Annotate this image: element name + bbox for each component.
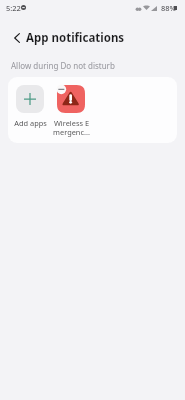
staticText: Add apps [14, 118, 47, 128]
staticText: App notifications [26, 30, 125, 46]
button[interactable]: Wireless E mergenc... [49, 85, 93, 137]
button[interactable]: Add apps [8, 85, 52, 128]
button[interactable]: Back [5, 26, 29, 50]
staticText: Wireless E mergenc... [53, 118, 90, 137]
staticText: Allow during Do not disturb [11, 60, 115, 71]
staticText: 5:22 [6, 3, 21, 13]
staticText: 88% [161, 3, 176, 13]
